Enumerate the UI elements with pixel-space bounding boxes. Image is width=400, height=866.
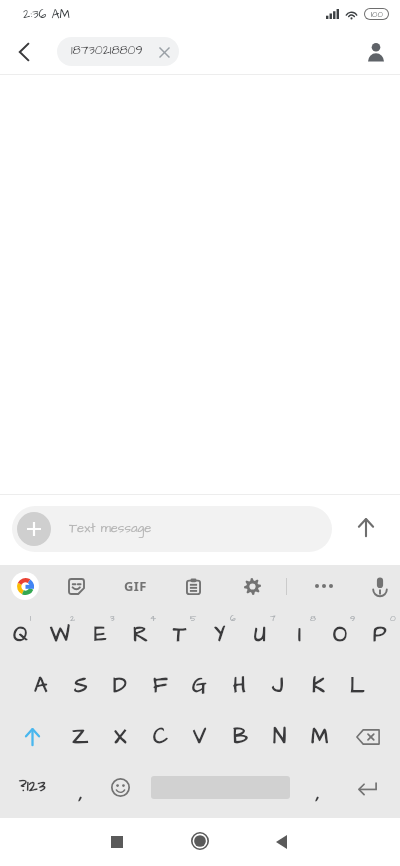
staticText: 100: [371, 9, 383, 19]
button[interactable]: GIF: [118, 569, 152, 603]
staticText: P: [373, 620, 387, 649]
button[interactable]: Emoji: [100, 762, 140, 813]
staticText: C: [153, 722, 168, 751]
staticText: N: [273, 722, 287, 751]
button[interactable]: K: [298, 660, 338, 711]
staticText: 5: [190, 612, 197, 625]
button[interactable]: J: [258, 660, 298, 711]
button[interactable]: W: [40, 609, 80, 660]
button[interactable]: Google: [8, 569, 42, 603]
button[interactable]: Comma: [61, 762, 101, 813]
staticText: 18730218809: [71, 42, 143, 59]
button[interactable]: ?123: [12, 762, 53, 813]
staticText: F: [153, 671, 168, 700]
staticText: Q: [13, 620, 28, 649]
staticText: 0: [390, 612, 396, 625]
button[interactable]: T: [160, 609, 200, 660]
button[interactable]: P: [360, 609, 400, 660]
button[interactable]: Period: [298, 762, 338, 813]
staticText: 2: [70, 612, 76, 625]
button[interactable]: Enter: [347, 762, 387, 813]
staticText: ?123: [19, 776, 46, 798]
button[interactable]: C: [140, 711, 180, 762]
button[interactable]: Back: [257, 818, 305, 866]
button[interactable]: Settings: [235, 569, 269, 603]
button[interactable]: Stickers: [59, 569, 93, 603]
staticText: ,: [316, 778, 320, 807]
staticText: Z: [72, 722, 89, 751]
button[interactable]: H: [219, 660, 259, 711]
button[interactable]: 18730218809: [57, 37, 179, 66]
button[interactable]: G: [179, 660, 219, 711]
staticText: H: [233, 671, 246, 700]
button[interactable]: Q: [0, 609, 40, 660]
staticText: O: [333, 620, 348, 649]
button[interactable]: Shift: [12, 711, 52, 762]
button[interactable]: N: [260, 711, 300, 762]
staticText: Y: [214, 620, 226, 649]
button[interactable]: Send: [346, 507, 386, 547]
button[interactable]: More options: [307, 569, 341, 603]
button[interactable]: Voice input: [363, 569, 397, 603]
staticText: L: [350, 671, 365, 700]
staticText: ,: [79, 778, 83, 807]
staticText: U: [254, 620, 266, 649]
button[interactable]: B: [220, 711, 260, 762]
button[interactable]: Attach: [12, 506, 332, 552]
staticText: Text message: [69, 519, 152, 537]
button[interactable]: X: [100, 711, 140, 762]
staticText: 8: [310, 612, 316, 625]
staticText: X: [114, 722, 127, 751]
staticText: T: [173, 620, 187, 649]
staticText: J: [272, 671, 284, 700]
staticText: V: [193, 722, 207, 751]
staticText: G: [192, 671, 207, 700]
staticText: 4: [150, 612, 157, 625]
button[interactable]: Attach: [17, 512, 51, 546]
staticText: 2:36 AM: [23, 6, 70, 23]
button[interactable]: Remove recipient: [154, 42, 174, 62]
staticText: I: [298, 620, 302, 649]
button[interactable]: O: [320, 609, 360, 660]
staticText: 1: [30, 612, 32, 625]
staticText: 6: [230, 612, 236, 625]
button[interactable]: Recent apps: [93, 818, 141, 866]
button[interactable]: F: [140, 660, 180, 711]
button[interactable]: R: [120, 609, 160, 660]
button[interactable]: Contact details: [356, 32, 396, 72]
button[interactable]: A: [21, 660, 61, 711]
button[interactable]: Back: [4, 32, 44, 72]
staticText: R: [133, 620, 148, 649]
button[interactable]: V: [180, 711, 220, 762]
button[interactable]: E: [80, 609, 120, 660]
staticText: E: [94, 620, 107, 649]
staticText: 7: [270, 612, 276, 625]
button[interactable]: U: [240, 609, 280, 660]
staticText: GIF: [124, 577, 147, 595]
button[interactable]: Backspace: [348, 711, 388, 762]
staticText: 3: [110, 612, 115, 625]
button[interactable]: I: [280, 609, 320, 660]
staticText: M: [311, 722, 329, 751]
staticText: B: [233, 722, 248, 751]
button[interactable]: Y: [200, 609, 240, 660]
staticText: 9: [350, 612, 356, 625]
staticText: D: [113, 671, 127, 700]
button[interactable]: M: [300, 711, 340, 762]
staticText: A: [34, 671, 48, 700]
staticText: K: [312, 671, 325, 700]
button[interactable]: S: [61, 660, 101, 711]
button[interactable]: Z: [60, 711, 100, 762]
button[interactable]: L: [337, 660, 377, 711]
button[interactable]: Clipboard: [176, 569, 210, 603]
button[interactable]: D: [100, 660, 140, 711]
staticText: W: [50, 620, 70, 649]
button[interactable]: Home: [176, 818, 224, 866]
staticText: S: [74, 671, 88, 700]
